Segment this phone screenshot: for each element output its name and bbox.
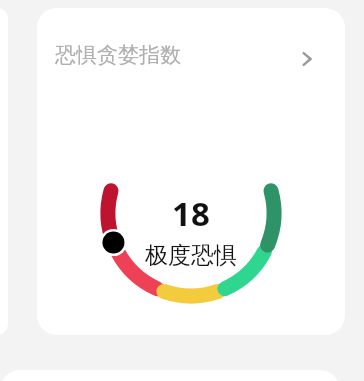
staticText: 恐惧贪婪指数: [55, 42, 181, 68]
staticText: 极度恐惧: [145, 241, 237, 270]
button[interactable]: 查看详情: [285, 37, 329, 81]
button[interactable]: 恐惧贪婪指数: [37, 8, 345, 335]
staticText: 18: [172, 191, 210, 235]
